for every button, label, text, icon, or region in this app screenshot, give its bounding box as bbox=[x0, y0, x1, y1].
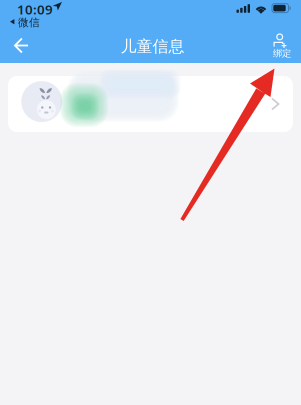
staticText: 儿童信息 bbox=[120, 37, 184, 56]
button[interactable] bbox=[8, 76, 293, 132]
button[interactable]: 绑定 bbox=[260, 28, 300, 63]
staticText: 绑定 bbox=[273, 48, 291, 59]
staticText: 10:09 bbox=[17, 0, 53, 18]
button[interactable]: Back bbox=[0, 28, 42, 63]
staticText: 微信 bbox=[18, 16, 40, 29]
